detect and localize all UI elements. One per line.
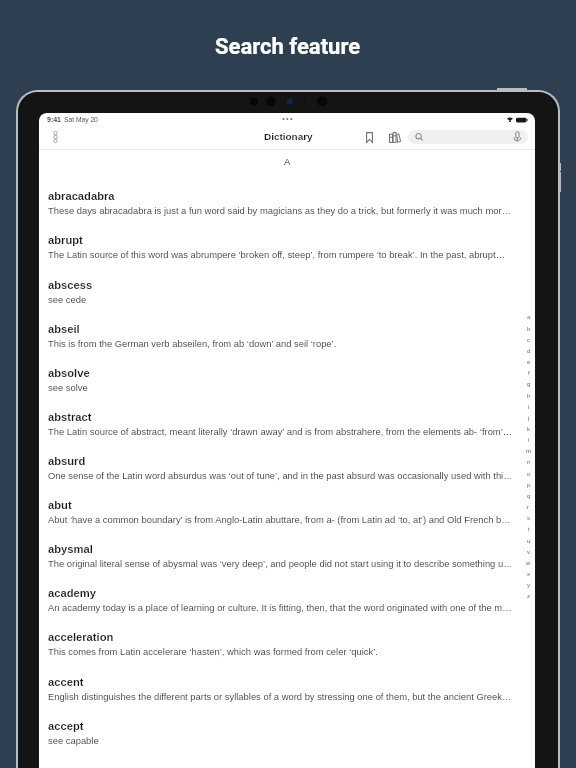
button[interactable]: Menu xyxy=(46,128,64,146)
button[interactable]: abscess xyxy=(39,279,535,321)
staticText: see solve xyxy=(48,382,88,393)
button[interactable]: abysmal xyxy=(39,543,535,585)
staticText: accept xyxy=(48,720,84,733)
staticText: i xyxy=(528,403,530,410)
staticText: abscess xyxy=(48,279,93,292)
staticText: p xyxy=(527,481,531,488)
staticText: abseil xyxy=(48,323,80,336)
staticText: 9:41 xyxy=(47,116,62,124)
staticText: accent xyxy=(48,676,84,689)
staticText: see capable xyxy=(48,735,99,746)
staticText: abstract xyxy=(48,411,92,424)
staticText: m xyxy=(526,447,532,454)
staticText: q xyxy=(527,492,531,499)
staticText: w xyxy=(526,559,531,566)
button[interactable]: abrupt xyxy=(39,234,535,276)
staticText: y xyxy=(527,581,531,588)
button[interactable]: abut xyxy=(39,499,535,541)
staticText: absolve xyxy=(48,367,90,380)
staticText: These days abracadabra is just a fun wor… xyxy=(48,205,511,216)
staticText: Dictionary xyxy=(264,131,313,142)
staticText: e xyxy=(527,358,531,365)
staticText: An academy today is a place of learning … xyxy=(48,602,511,613)
staticText: f xyxy=(528,369,530,376)
staticText: s xyxy=(527,514,531,521)
staticText: x xyxy=(527,570,531,577)
button[interactable]: absolve xyxy=(39,367,535,409)
button[interactable]: Bookmarks xyxy=(357,129,382,145)
staticText: see cede xyxy=(48,294,87,305)
button[interactable]: Search xyxy=(408,130,528,144)
staticText: t xyxy=(528,525,530,532)
staticText: acceleration xyxy=(48,631,114,644)
staticText: g xyxy=(527,380,531,387)
staticText: The Latin source of abstract, meant lite… xyxy=(48,426,511,437)
staticText: The Latin source of this word was abrump… xyxy=(48,249,506,260)
staticText: The original literal sense of abysmal wa… xyxy=(48,558,511,569)
staticText: A xyxy=(284,156,291,167)
staticText: academy xyxy=(48,587,96,600)
staticText: k xyxy=(527,425,531,432)
staticText: h xyxy=(527,392,531,399)
staticText: z xyxy=(527,592,531,599)
staticText: abracadabra xyxy=(48,190,115,203)
button[interactable]: abseil xyxy=(39,323,535,365)
button[interactable]: acceleration xyxy=(39,631,535,673)
staticText: b xyxy=(527,325,531,332)
staticText: abut xyxy=(48,499,72,512)
staticText: n xyxy=(527,458,531,465)
button[interactable]: abracadabra xyxy=(39,190,535,232)
staticText: abrupt xyxy=(48,234,83,247)
staticText: English distinguishes the different part… xyxy=(48,691,511,702)
staticText: o xyxy=(527,470,531,477)
staticText: d xyxy=(527,347,531,354)
staticText: Abut ‘have a common boundary’ is from An… xyxy=(48,514,511,525)
button[interactable]: accent xyxy=(39,676,535,718)
button[interactable]: abstract xyxy=(39,411,535,453)
staticText: r xyxy=(527,503,530,510)
button[interactable]: absurd xyxy=(39,455,535,497)
staticText: This is from the German verb abseilen, f… xyxy=(48,338,337,349)
staticText: v xyxy=(527,548,531,555)
staticText: a xyxy=(527,313,531,320)
staticText: Sat May 20 xyxy=(64,116,98,123)
staticText: One sense of the Latin word absurdus was… xyxy=(48,470,511,481)
button[interactable]: accept xyxy=(39,720,535,762)
staticText: absurd xyxy=(48,455,86,468)
button[interactable]: Library xyxy=(383,129,407,145)
staticText: This comes from Latin accelerare ‘hasten… xyxy=(48,646,378,657)
staticText: c xyxy=(527,336,531,343)
staticText: Search feature xyxy=(215,34,361,60)
staticText: u xyxy=(527,537,531,544)
button[interactable]: academy xyxy=(39,587,535,629)
staticText: abysmal xyxy=(48,543,93,556)
staticText: j xyxy=(528,414,530,421)
staticText: l xyxy=(528,436,530,443)
